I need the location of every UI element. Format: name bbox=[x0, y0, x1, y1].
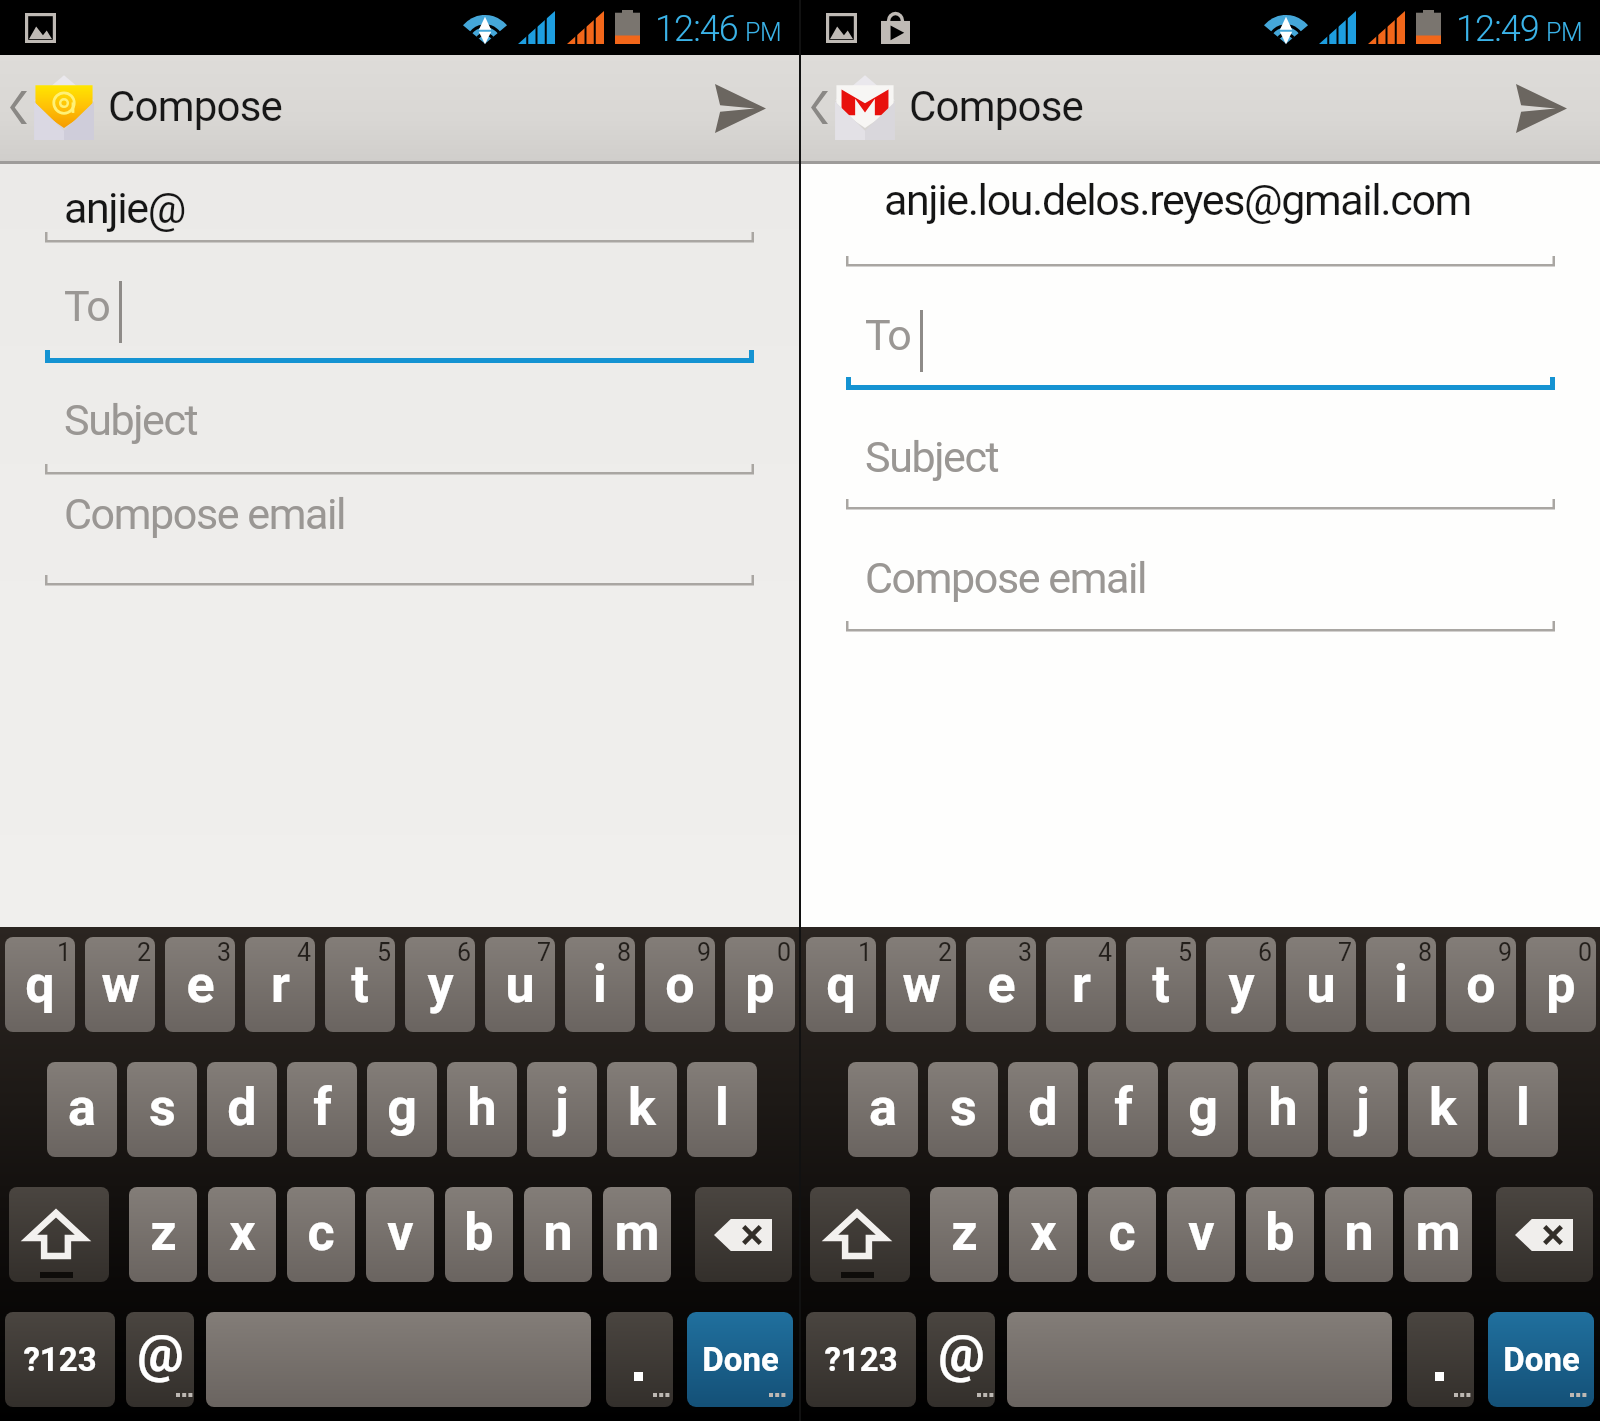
staticText: 5 bbox=[377, 938, 392, 962]
button[interactable]: o bbox=[1446, 937, 1516, 1032]
staticText: z bbox=[150, 1202, 177, 1263]
button[interactable]: Space bbox=[206, 1312, 591, 1407]
staticText: u bbox=[505, 954, 535, 1015]
button[interactable]: Backspace bbox=[1496, 1187, 1593, 1282]
button[interactable]: Period bbox=[606, 1312, 673, 1407]
button[interactable]: m bbox=[603, 1187, 671, 1282]
button[interactable]: h bbox=[1248, 1062, 1318, 1157]
button[interactable]: n bbox=[524, 1187, 592, 1282]
button[interactable]: i bbox=[565, 937, 635, 1032]
button[interactable]: n bbox=[1325, 1187, 1393, 1282]
button[interactable]: Back bbox=[801, 55, 905, 159]
button[interactable]: p bbox=[725, 937, 795, 1032]
staticText: s bbox=[950, 1077, 977, 1138]
button[interactable]: y bbox=[405, 937, 475, 1032]
staticText: 8 bbox=[617, 938, 632, 962]
button[interactable]: Shift bbox=[9, 1187, 109, 1282]
button[interactable]: t bbox=[1126, 937, 1196, 1032]
staticText: c bbox=[1108, 1202, 1136, 1263]
button[interactable]: o bbox=[645, 937, 715, 1032]
button[interactable]: q bbox=[5, 937, 75, 1032]
button[interactable]: z bbox=[129, 1187, 197, 1282]
button[interactable]: Compose email bbox=[801, 544, 1600, 612]
button[interactable]: ?123 bbox=[806, 1312, 916, 1407]
button[interactable]: a bbox=[848, 1062, 918, 1157]
staticText: 9 bbox=[697, 938, 712, 962]
staticText: ?123 bbox=[23, 1340, 97, 1379]
button[interactable]: i bbox=[1366, 937, 1436, 1032]
button[interactable]: Compose email bbox=[0, 480, 799, 548]
button[interactable]: k bbox=[1408, 1062, 1478, 1157]
button[interactable]: g bbox=[367, 1062, 437, 1157]
staticText: k bbox=[628, 1077, 656, 1138]
button[interactable]: @ bbox=[927, 1312, 995, 1407]
staticText: m bbox=[614, 1202, 660, 1263]
staticText: e bbox=[987, 954, 1016, 1015]
button[interactable]: d bbox=[207, 1062, 277, 1157]
staticText: Subject bbox=[64, 395, 198, 445]
button[interactable]: c bbox=[1088, 1187, 1156, 1282]
button[interactable]: Back bbox=[0, 55, 104, 159]
button[interactable]: l bbox=[687, 1062, 757, 1157]
button[interactable]: To bbox=[0, 272, 799, 340]
button[interactable]: Done bbox=[687, 1312, 793, 1407]
button[interactable]: Space bbox=[1007, 1312, 1392, 1407]
staticText: z bbox=[951, 1202, 978, 1263]
button[interactable]: h bbox=[447, 1062, 517, 1157]
button[interactable]: r bbox=[1046, 937, 1116, 1032]
button[interactable]: x bbox=[208, 1187, 276, 1282]
button[interactable]: x bbox=[1009, 1187, 1077, 1282]
button[interactable]: To bbox=[801, 301, 1600, 369]
button[interactable]: b bbox=[1246, 1187, 1314, 1282]
button[interactable]: a bbox=[47, 1062, 117, 1157]
button[interactable]: k bbox=[607, 1062, 677, 1157]
button[interactable]: p bbox=[1526, 937, 1596, 1032]
button[interactable]: Send bbox=[1491, 55, 1600, 159]
button[interactable]: g bbox=[1168, 1062, 1238, 1157]
button[interactable]: v bbox=[1167, 1187, 1235, 1282]
button[interactable]: anjie.lou.delos.reyes@gmail.com bbox=[801, 168, 1600, 232]
button[interactable]: t bbox=[325, 937, 395, 1032]
button[interactable]: j bbox=[527, 1062, 597, 1157]
button[interactable]: Send bbox=[690, 55, 799, 159]
button[interactable]: q bbox=[806, 937, 876, 1032]
button[interactable]: u bbox=[485, 937, 555, 1032]
button[interactable]: e bbox=[966, 937, 1036, 1032]
staticText: r bbox=[271, 954, 290, 1015]
button[interactable]: ?123 bbox=[5, 1312, 115, 1407]
button[interactable]: @ bbox=[126, 1312, 194, 1407]
button[interactable]: e bbox=[165, 937, 235, 1032]
button[interactable]: s bbox=[127, 1062, 197, 1157]
button[interactable]: Done bbox=[1488, 1312, 1594, 1407]
staticText: 12:49 bbox=[1456, 8, 1539, 50]
button[interactable]: anjie@ bbox=[0, 176, 799, 240]
button[interactable]: Backspace bbox=[695, 1187, 792, 1282]
button[interactable]: u bbox=[1286, 937, 1356, 1032]
button[interactable]: s bbox=[928, 1062, 998, 1157]
staticText: d bbox=[1028, 1077, 1058, 1138]
button[interactable]: w bbox=[886, 937, 956, 1032]
button[interactable]: j bbox=[1328, 1062, 1398, 1157]
staticText: p bbox=[1546, 954, 1576, 1015]
staticText: b bbox=[1265, 1202, 1295, 1263]
button[interactable]: f bbox=[1088, 1062, 1158, 1157]
button[interactable]: r bbox=[245, 937, 315, 1032]
button[interactable]: Shift bbox=[810, 1187, 910, 1282]
staticText: 4 bbox=[1098, 938, 1113, 962]
button[interactable]: y bbox=[1206, 937, 1276, 1032]
button[interactable]: Period bbox=[1407, 1312, 1474, 1407]
button[interactable]: c bbox=[287, 1187, 355, 1282]
button[interactable]: m bbox=[1404, 1187, 1472, 1282]
button[interactable]: w bbox=[85, 937, 155, 1032]
staticText: d bbox=[227, 1077, 257, 1138]
button[interactable]: l bbox=[1488, 1062, 1558, 1157]
staticText: 8 bbox=[1418, 938, 1433, 962]
button[interactable]: z bbox=[930, 1187, 998, 1282]
button[interactable]: b bbox=[445, 1187, 513, 1282]
button[interactable]: Subject bbox=[801, 423, 1600, 491]
button[interactable]: Subject bbox=[0, 386, 799, 454]
button[interactable]: d bbox=[1008, 1062, 1078, 1157]
button[interactable]: v bbox=[366, 1187, 434, 1282]
staticText: j bbox=[1356, 1077, 1370, 1138]
button[interactable]: f bbox=[287, 1062, 357, 1157]
